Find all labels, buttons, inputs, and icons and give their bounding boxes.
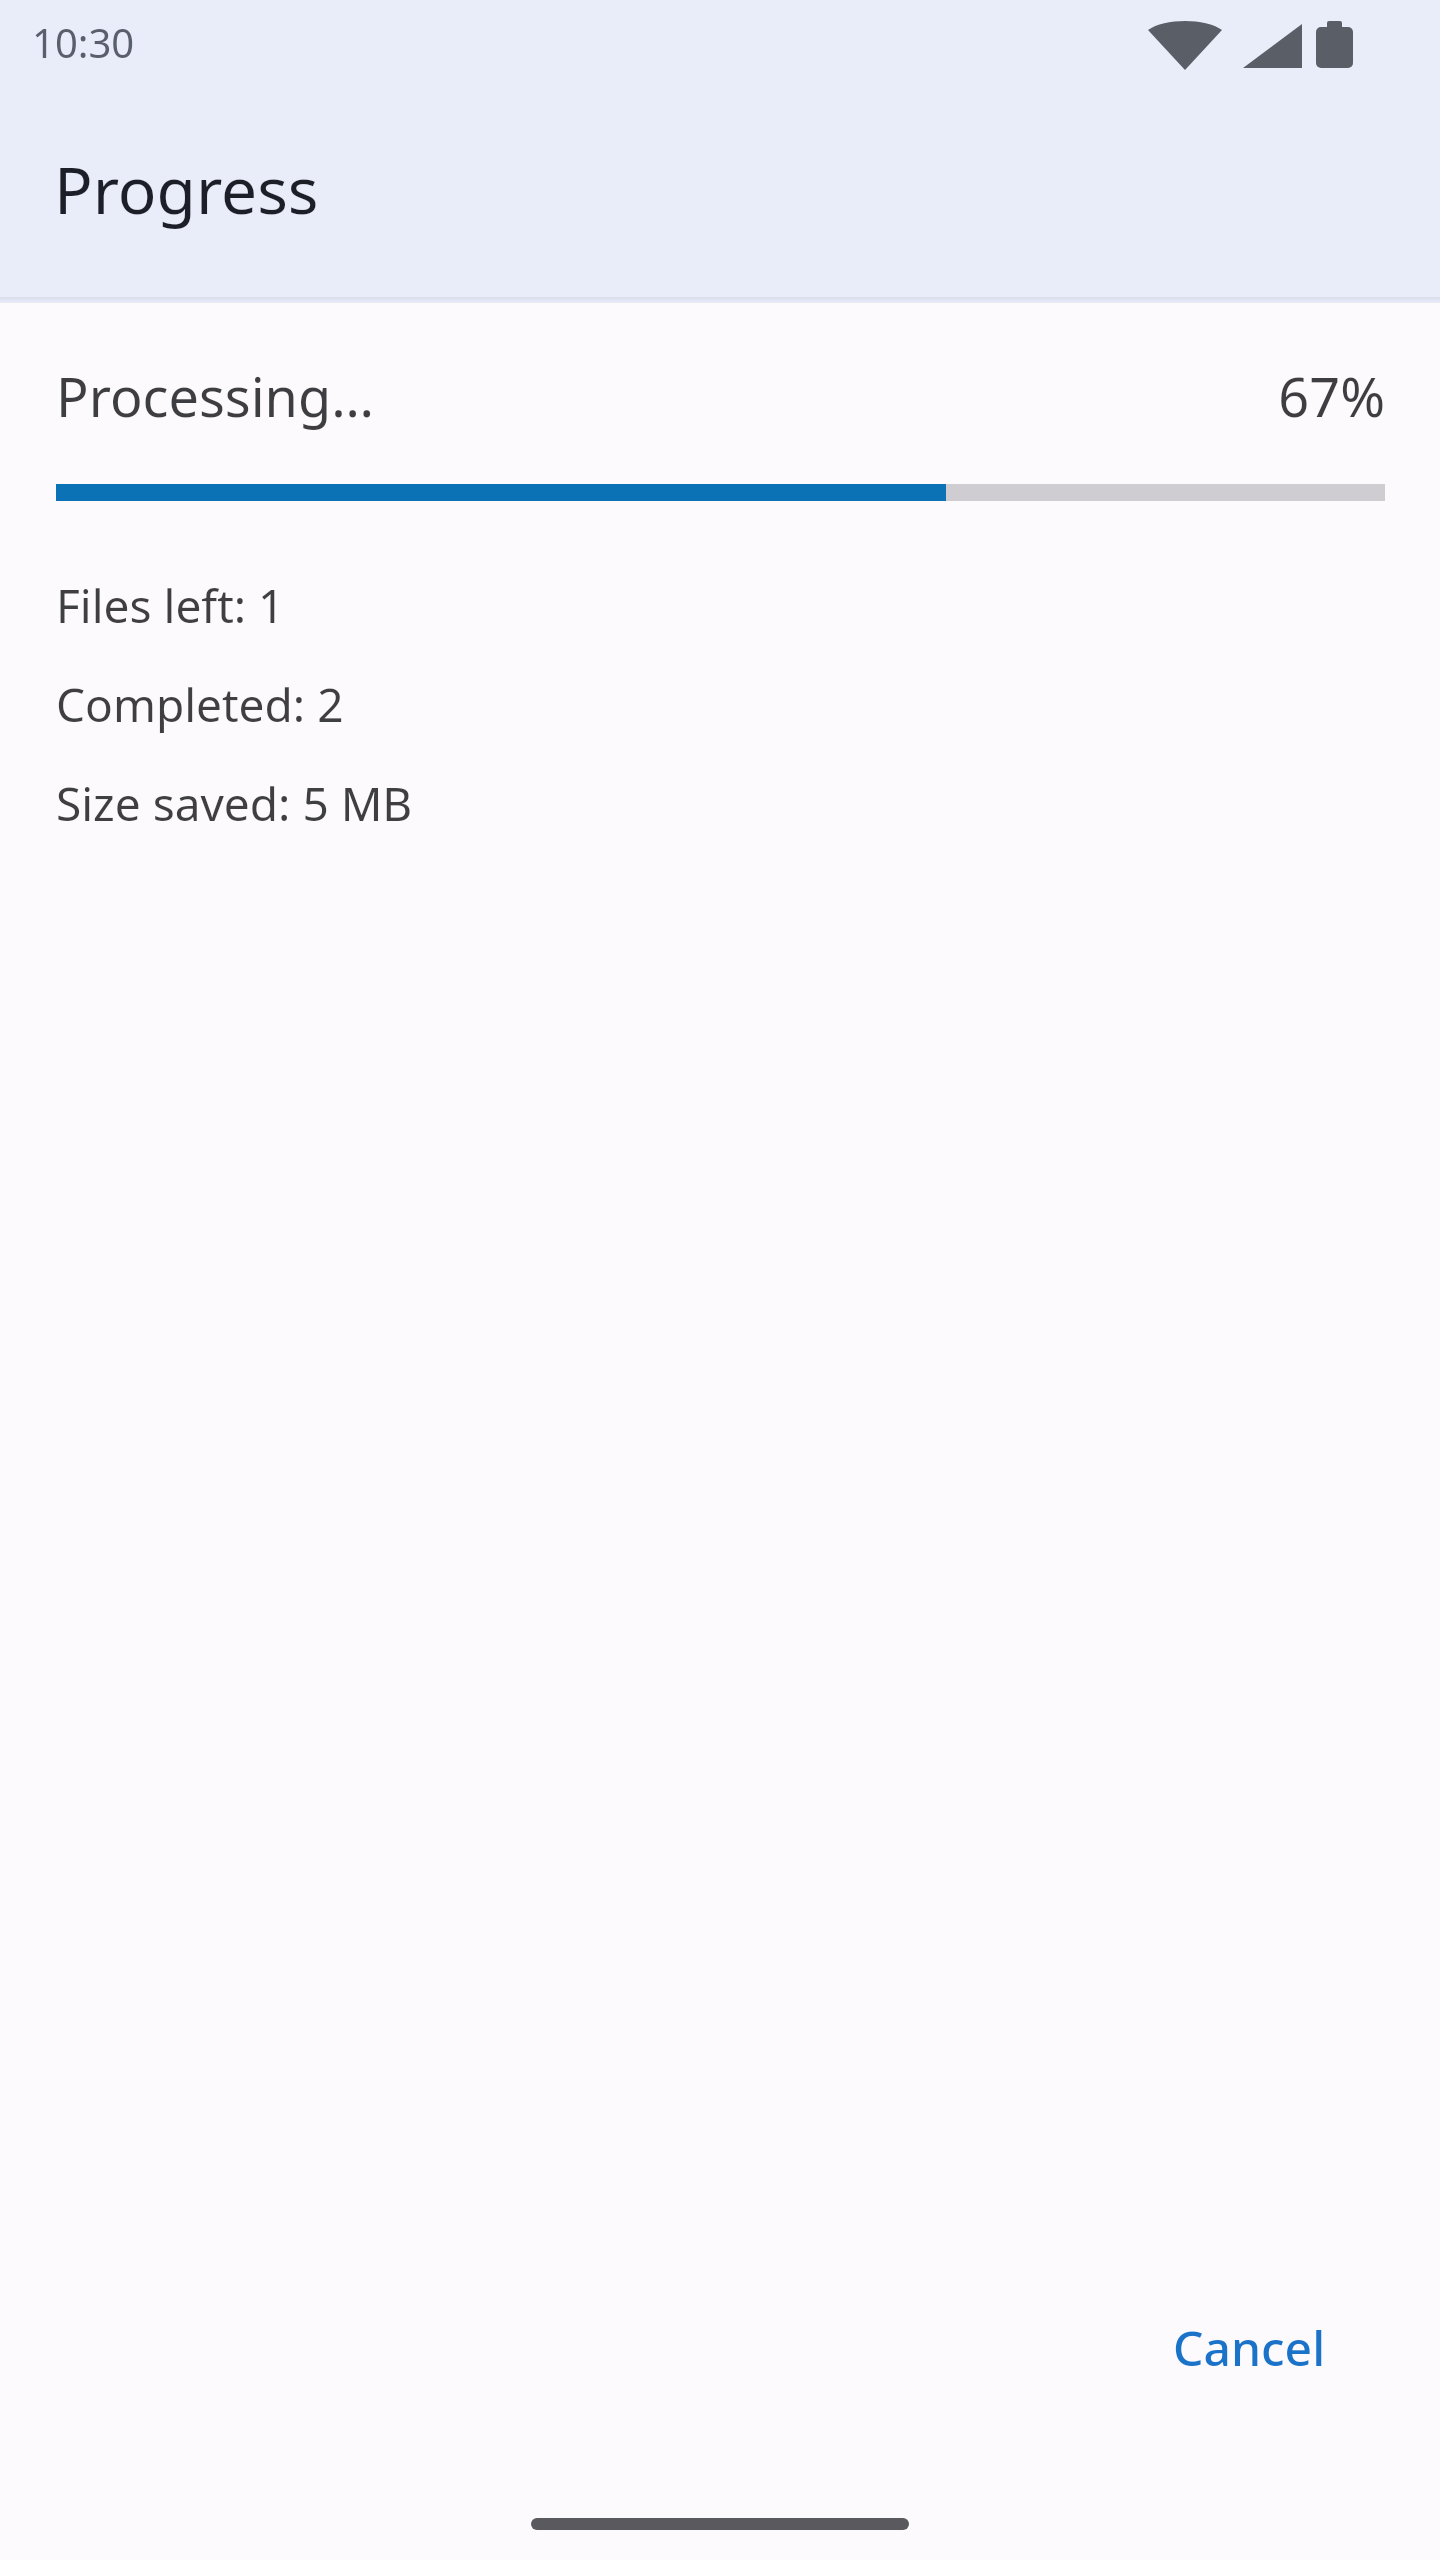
staticText: Size saved: 5 MB [56, 772, 413, 835]
staticText: Progress [54, 146, 319, 233]
staticText: 67% [1278, 359, 1385, 433]
staticText: 10:30 [32, 15, 135, 69]
staticText: Cancel [1173, 2315, 1326, 2380]
other: Home gesture [0, 2512, 1440, 2536]
button[interactable]: Cancel [1149, 2295, 1350, 2400]
staticText: Processing… [56, 359, 374, 433]
staticText: Completed: 2 [56, 673, 344, 736]
staticText: Files left: 1 [56, 574, 285, 637]
